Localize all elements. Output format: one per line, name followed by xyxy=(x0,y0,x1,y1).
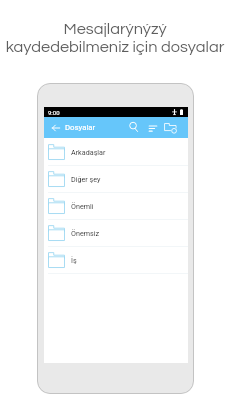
staticText: Diğer şey xyxy=(71,175,101,183)
button[interactable]: Önemsiz xyxy=(44,220,188,246)
staticText: 9:00 xyxy=(48,109,60,116)
staticText: Önemli xyxy=(71,202,94,210)
staticText: Arkadaşlar xyxy=(71,148,106,156)
button[interactable]: Diğer şey xyxy=(44,166,188,192)
button[interactable]: Back xyxy=(49,121,63,135)
button[interactable]: New folder xyxy=(164,120,178,134)
button[interactable]: Önemli xyxy=(44,193,188,219)
button[interactable]: Search xyxy=(126,120,140,134)
button[interactable]: İş xyxy=(44,247,188,273)
staticText: Önemsiz xyxy=(71,229,100,237)
staticText: Dosyalar xyxy=(65,123,96,138)
button[interactable]: Arkadaşlar xyxy=(44,139,188,165)
staticText: Mesajlarýnýzý kaydedebilmeniz için dosya… xyxy=(0,21,230,55)
staticText: İş xyxy=(71,256,77,264)
button[interactable]: Sort xyxy=(146,121,160,135)
